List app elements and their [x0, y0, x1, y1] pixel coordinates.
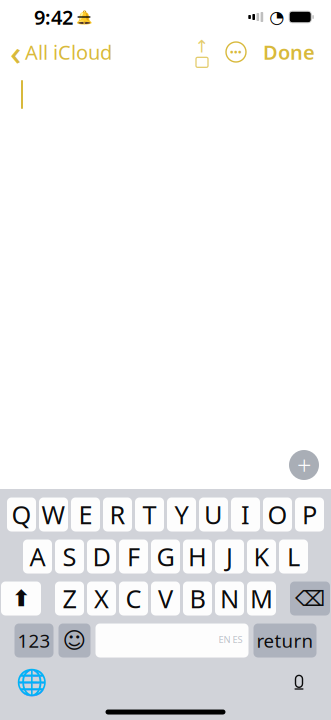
button[interactable]: F: [119, 539, 148, 573]
staticText: ↑: [194, 37, 209, 56]
staticText: return: [256, 628, 313, 653]
staticText: L: [287, 540, 300, 573]
staticText: 🔔: [75, 9, 92, 25]
staticText: D: [92, 540, 110, 573]
staticText: H: [188, 540, 207, 573]
button[interactable]: Share: [185, 35, 219, 69]
staticText: G: [156, 540, 174, 573]
staticText: ◔: [269, 7, 284, 27]
staticText: R: [109, 498, 125, 531]
button[interactable]: L: [279, 539, 308, 573]
staticText: O: [267, 498, 287, 531]
staticText: 🌐: [16, 668, 48, 697]
staticText: Y: [174, 498, 188, 531]
button[interactable]: return: [253, 623, 316, 657]
button[interactable]: M: [247, 581, 276, 615]
button[interactable]: R: [103, 497, 132, 531]
staticText: F: [127, 540, 140, 573]
staticText: P: [302, 498, 317, 531]
button[interactable]: O: [263, 497, 292, 531]
button[interactable]: J: [215, 539, 244, 573]
button[interactable]: D: [87, 539, 116, 573]
button[interactable]: Z: [55, 581, 84, 615]
button[interactable]: space: [95, 623, 248, 657]
button[interactable]: X: [87, 581, 116, 615]
staticText: E: [78, 498, 92, 531]
staticText: A: [29, 540, 45, 573]
staticText: S: [62, 540, 76, 573]
button[interactable]: Numbers: [14, 623, 53, 657]
staticText: 9:42: [34, 4, 73, 30]
button[interactable]: Add attachment: [284, 445, 324, 485]
button[interactable]: K: [247, 539, 276, 573]
button[interactable]: H: [183, 539, 212, 573]
staticText: K: [253, 540, 269, 573]
button[interactable]: ‹: [0, 25, 112, 79]
staticText: B: [189, 582, 205, 615]
button[interactable]: C: [119, 581, 148, 615]
staticText: T: [142, 498, 156, 531]
staticText: V: [158, 582, 173, 615]
staticText: J: [226, 540, 233, 573]
staticText: ⌫: [295, 586, 325, 611]
button[interactable]: More: [219, 35, 253, 69]
staticText: ☺: [62, 628, 86, 653]
button[interactable]: B: [183, 581, 212, 615]
button[interactable]: S: [55, 539, 84, 573]
staticText: W: [41, 498, 65, 531]
button[interactable]: U: [199, 497, 228, 531]
staticText: U: [204, 498, 223, 531]
staticText: Q: [11, 498, 31, 531]
button[interactable]: Emoji: [58, 623, 90, 657]
staticText: EN ES: [218, 633, 242, 646]
button[interactable]: Done: [253, 33, 325, 71]
staticText: M: [250, 582, 273, 615]
staticText: ⬆: [11, 586, 30, 611]
button[interactable]: N: [215, 581, 244, 615]
button[interactable]: I: [231, 497, 260, 531]
button[interactable]: W: [39, 497, 68, 531]
button[interactable]: V: [151, 581, 180, 615]
staticText: I: [241, 498, 250, 531]
staticText: Done: [263, 39, 315, 65]
button[interactable]: A: [23, 539, 52, 573]
button[interactable]: P: [295, 497, 324, 531]
staticText: C: [125, 582, 141, 615]
button[interactable]: Next keyboard: [12, 663, 52, 701]
button[interactable]: Dictate: [279, 663, 319, 701]
staticText: ‹: [10, 29, 21, 75]
staticText: •••: [230, 46, 242, 58]
staticText: 123: [17, 628, 50, 653]
button[interactable]: Delete: [290, 581, 330, 615]
staticText: X: [94, 582, 109, 615]
staticText: +: [297, 448, 311, 482]
staticText: Z: [62, 582, 76, 615]
staticText: All iCloud: [25, 39, 112, 65]
button[interactable]: Shift: [1, 581, 41, 615]
button[interactable]: E: [71, 497, 100, 531]
button[interactable]: Y: [167, 497, 196, 531]
staticText: N: [220, 582, 239, 615]
button[interactable]: Q: [7, 497, 36, 531]
button[interactable]: G: [151, 539, 180, 573]
button[interactable]: T: [135, 497, 164, 531]
